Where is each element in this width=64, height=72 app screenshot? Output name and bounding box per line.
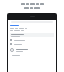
button[interactable]: [10, 25, 54, 26]
other: Diagram node: [10, 48, 14, 52]
button[interactable]: Diagram node: [10, 48, 54, 52]
button[interactable]: [10, 33, 54, 37]
button[interactable]: List item icon: [10, 39, 54, 41]
button[interactable]: List item icon: [10, 43, 54, 45]
